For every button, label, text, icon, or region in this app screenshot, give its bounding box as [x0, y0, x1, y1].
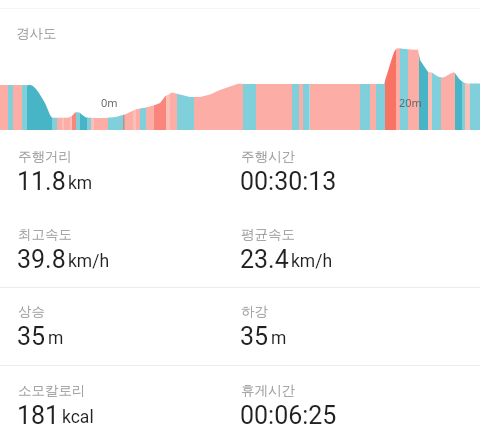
button[interactable]: 평균속도 [240, 226, 333, 255]
staticText: 00:30:13 [240, 167, 337, 196]
staticText: 0m [101, 95, 118, 110]
staticText: km [68, 173, 93, 194]
button[interactable]: 최고속도 [17, 226, 110, 255]
staticText: 휴게시간 [241, 382, 295, 399]
staticText: 11.8 [17, 167, 66, 196]
button[interactable]: 주행시간 [240, 148, 337, 177]
staticText: kcal [62, 407, 94, 428]
staticText: 평균속도 [241, 226, 295, 243]
staticText: 00:06:25 [240, 401, 337, 430]
staticText: 181 [17, 401, 60, 430]
staticText: 소모칼로리 [18, 382, 86, 399]
staticText: 하강 [241, 303, 268, 320]
staticText: 주행거리 [18, 148, 72, 165]
staticText: 20m [399, 95, 422, 110]
button[interactable]: 휴게시간 [240, 382, 337, 411]
staticText: km/h [68, 251, 110, 272]
staticText: 35 [17, 322, 46, 351]
staticText: 주행시간 [241, 148, 295, 165]
button[interactable]: 상승 [17, 303, 64, 332]
staticText: 최고속도 [18, 226, 72, 243]
staticText: 경사도 [16, 25, 57, 42]
button[interactable]: 주행거리 [17, 148, 93, 177]
staticText: m [271, 328, 287, 349]
staticText: 23.4 [240, 245, 289, 274]
staticText: 상승 [18, 303, 45, 320]
staticText: km/h [291, 251, 333, 272]
button[interactable]: 하강 [240, 303, 287, 332]
button[interactable]: 소모칼로리 [17, 382, 94, 411]
staticText: 39.8 [17, 245, 66, 274]
staticText: m [48, 328, 64, 349]
staticText: 35 [240, 322, 269, 351]
